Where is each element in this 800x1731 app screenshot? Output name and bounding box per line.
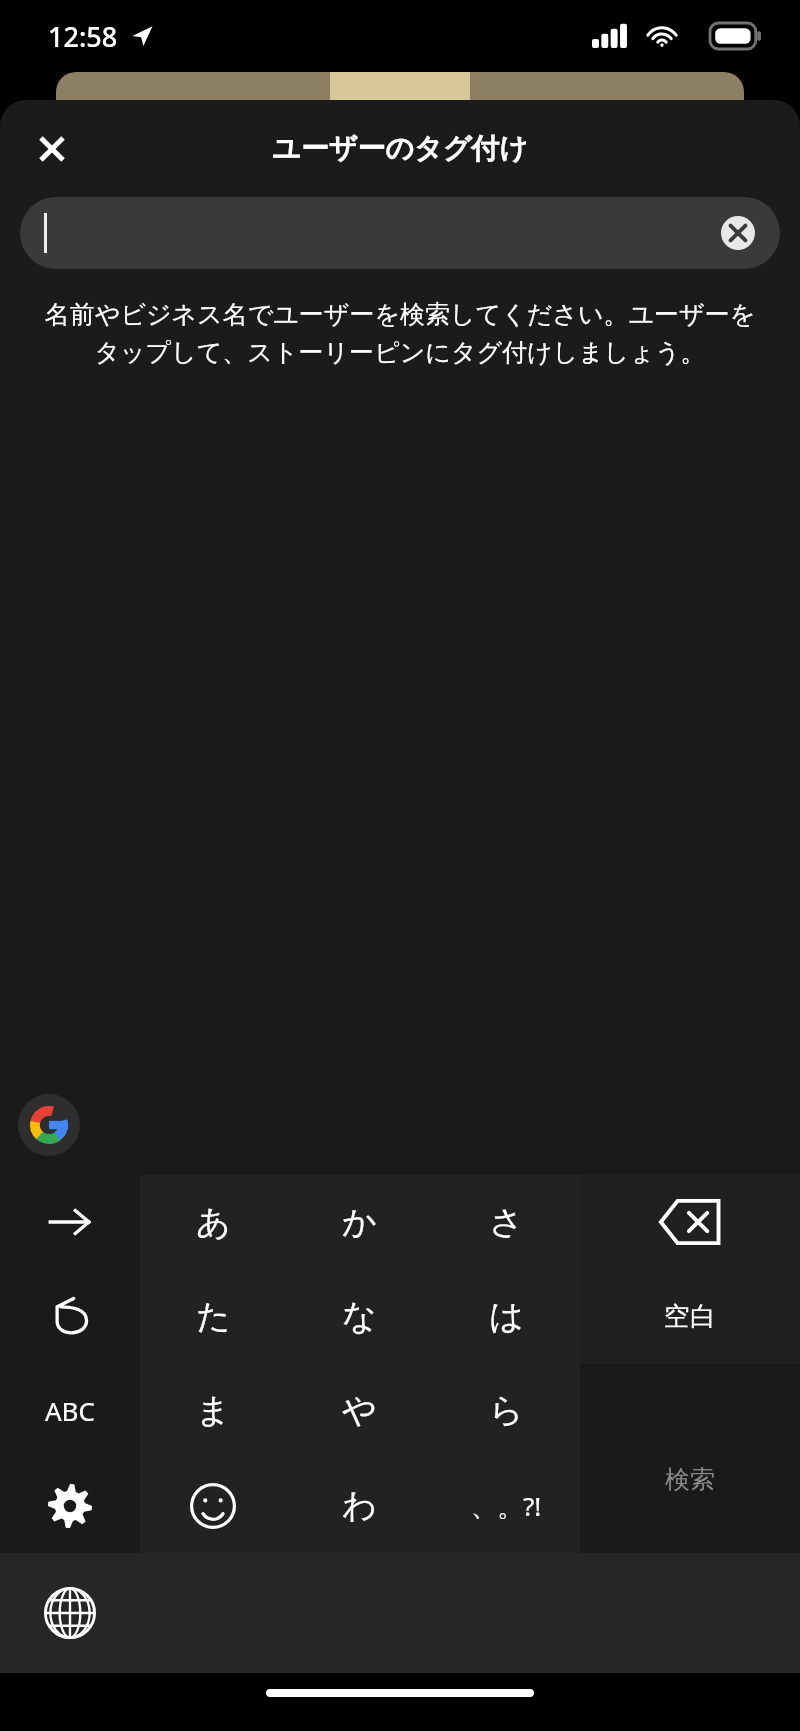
staticText: 空白 — [664, 1300, 716, 1333]
button[interactable]: あ — [140, 1175, 286, 1269]
button[interactable]: は — [433, 1269, 580, 1363]
staticText: な — [342, 1295, 377, 1338]
staticText: あ — [196, 1201, 231, 1244]
button[interactable]: わ — [286, 1458, 433, 1553]
other: Emoji — [190, 1483, 236, 1529]
button[interactable]: Backspace — [580, 1175, 800, 1269]
staticText: 、。?! — [471, 1488, 542, 1524]
button[interactable]: ABC — [0, 1363, 140, 1458]
staticText: 名前やビジネス名でユーザーを検索してください。ユーザーをタップして、ストーリーピ… — [34, 299, 766, 369]
button[interactable]: か — [286, 1175, 433, 1269]
button[interactable]: Settings — [0, 1458, 140, 1553]
other: Backspace — [659, 1199, 721, 1245]
staticText: や — [342, 1389, 377, 1432]
staticText: さ — [489, 1201, 524, 1244]
staticText: た — [196, 1295, 231, 1338]
staticText: は — [489, 1295, 524, 1338]
button[interactable]: 、。?! — [433, 1458, 580, 1553]
button[interactable]: ら — [433, 1363, 580, 1458]
staticText: ら — [489, 1389, 524, 1432]
other: Settings — [47, 1483, 93, 1529]
button[interactable]: Google — [18, 1094, 80, 1156]
button[interactable]: ま — [140, 1363, 286, 1458]
other: Undo — [47, 1293, 93, 1339]
button[interactable]: Change language — [38, 1581, 102, 1645]
button[interactable]: や — [286, 1363, 433, 1458]
button[interactable]: Emoji — [140, 1458, 286, 1553]
button[interactable]: Undo — [0, 1269, 140, 1363]
button[interactable]: Clear text — [716, 211, 760, 255]
button[interactable]: た — [140, 1269, 286, 1363]
staticText: か — [342, 1201, 377, 1244]
button[interactable]: 空白 — [580, 1269, 800, 1363]
button[interactable]: さ — [433, 1175, 580, 1269]
button[interactable]: Close — [18, 115, 86, 183]
staticText: わ — [342, 1484, 377, 1527]
staticText: 検索 — [665, 1464, 715, 1495]
staticText: ユーザーのタグ付け — [272, 131, 528, 166]
button[interactable]: 検索 — [580, 1458, 800, 1553]
other: Move cursor right — [48, 1200, 92, 1244]
button[interactable]: な — [286, 1269, 433, 1363]
staticText: 12:58 — [48, 18, 118, 55]
staticText: ABC — [45, 1393, 95, 1428]
staticText: ま — [196, 1389, 231, 1432]
button[interactable]: Clear text — [20, 197, 780, 269]
button[interactable]: Move cursor right — [0, 1175, 140, 1269]
